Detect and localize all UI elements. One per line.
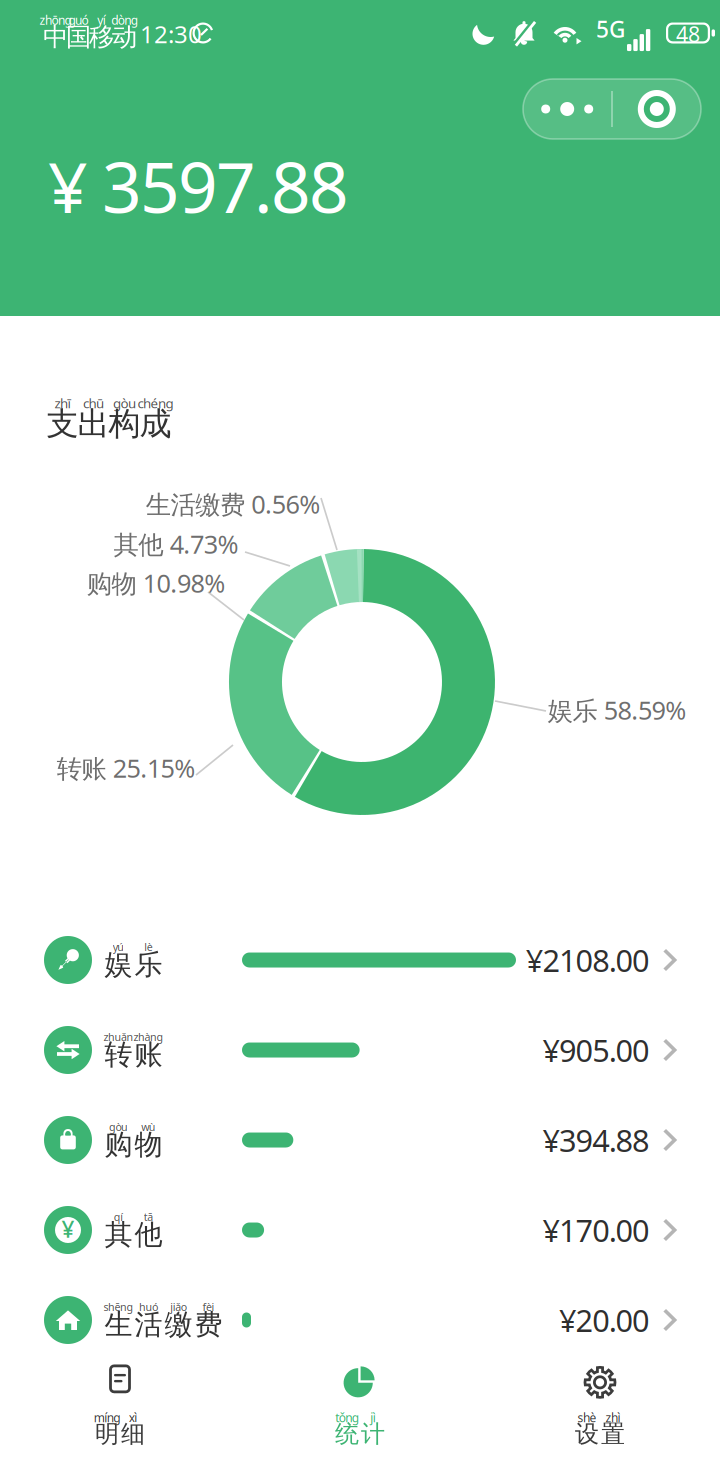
button[interactable]: míng xyxy=(30,1349,210,1459)
staticText: 支 xyxy=(46,404,78,443)
staticText: 购物 10.98% xyxy=(87,566,225,600)
staticText: yú xyxy=(113,940,124,954)
staticText: 活 xyxy=(134,1307,162,1342)
staticText: xì xyxy=(129,1410,137,1425)
staticText: 转 xyxy=(104,1037,132,1072)
staticText: 移 xyxy=(89,21,114,53)
staticText: zhōng xyxy=(39,12,72,28)
staticText: 置 xyxy=(601,1419,625,1449)
staticText: ¥394.88 xyxy=(542,1120,650,1160)
staticText: 5G xyxy=(596,14,625,44)
staticText: zhī xyxy=(54,394,71,412)
staticText: 其他 4.73% xyxy=(113,527,238,561)
staticText: 生活缴费 0.56% xyxy=(146,487,320,521)
staticText: 购 xyxy=(104,1127,132,1162)
staticText: zhàng xyxy=(133,1030,164,1044)
staticText: 计 xyxy=(361,1419,385,1449)
staticText: 生 xyxy=(104,1307,132,1342)
staticText: 细 xyxy=(121,1419,145,1449)
staticText: guó xyxy=(68,12,89,28)
staticText: 娱乐 58.59% xyxy=(548,693,686,727)
staticText: tǒng xyxy=(335,1410,359,1425)
staticText: 其 xyxy=(104,1217,132,1252)
staticText: 构 xyxy=(108,404,140,443)
button[interactable]: ¥ xyxy=(0,0,720,1469)
button[interactable]: Mini program menu xyxy=(523,79,701,139)
staticText: ¥ 3597.88 xyxy=(48,140,349,232)
staticText: 48 xyxy=(676,20,700,48)
staticText: míng xyxy=(94,1410,120,1425)
staticText: 12:30 xyxy=(140,18,202,50)
staticText: qí xyxy=(114,1210,123,1224)
staticText: 乐 xyxy=(134,947,162,982)
staticText: gòu xyxy=(113,394,136,412)
staticText: zhì xyxy=(605,1410,621,1425)
staticText: 中 xyxy=(43,21,68,53)
button[interactable]: tǒng xyxy=(270,1349,450,1459)
staticText: ¥170.00 xyxy=(542,1210,650,1250)
staticText: 出 xyxy=(77,404,109,443)
staticText: 动 xyxy=(112,21,137,53)
staticText: 设 xyxy=(575,1419,599,1449)
staticText: ¥905.00 xyxy=(542,1030,650,1070)
staticText: yí xyxy=(97,12,106,28)
staticText: dòng xyxy=(111,12,138,28)
staticText: 国 xyxy=(66,21,91,53)
staticText: gòu xyxy=(109,1120,128,1134)
staticText: 缴 xyxy=(164,1307,192,1342)
staticText: chéng xyxy=(137,394,174,412)
staticText: shēng xyxy=(103,1300,134,1314)
staticText: jiǎo xyxy=(170,1300,187,1314)
staticText: huó xyxy=(139,1300,158,1314)
staticText: 转账 25.15% xyxy=(57,751,195,785)
staticText: 成 xyxy=(139,404,171,443)
staticText: 明 xyxy=(95,1419,119,1449)
button[interactable]: yú xyxy=(0,0,720,1469)
staticText: fèi xyxy=(202,1300,215,1314)
staticText: 娱 xyxy=(104,947,132,982)
staticText: 费 xyxy=(194,1307,222,1342)
staticText: jì xyxy=(370,1410,376,1425)
staticText: zhuǎn xyxy=(103,1030,134,1044)
staticText: tā xyxy=(144,1210,153,1224)
staticText: ¥20.00 xyxy=(559,1300,650,1340)
button[interactable]: shēng xyxy=(0,0,720,1469)
button[interactable]: shè xyxy=(510,1349,690,1459)
button[interactable]: gòu xyxy=(0,0,720,1469)
staticText: ¥2108.00 xyxy=(526,940,650,980)
staticText: 账 xyxy=(134,1037,162,1072)
staticText: wù xyxy=(141,1120,156,1134)
staticText: lè xyxy=(144,940,153,954)
staticText: shè xyxy=(577,1410,597,1425)
staticText: ¥ xyxy=(61,1214,74,1244)
staticText: chū xyxy=(83,394,104,412)
staticText: 他 xyxy=(134,1217,162,1252)
button[interactable]: zhuǎn xyxy=(0,0,720,1469)
staticText: 物 xyxy=(134,1127,162,1162)
staticText: 统 xyxy=(335,1419,359,1449)
